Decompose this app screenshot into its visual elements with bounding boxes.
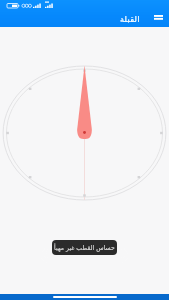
button[interactable]: حساس القطب غير مهيأ [52, 240, 117, 255]
button[interactable]: Open navigation menu [152, 11, 165, 24]
staticText: القبلة [120, 15, 140, 24]
staticText: حساس القطب غير مهيأ [54, 244, 115, 252]
